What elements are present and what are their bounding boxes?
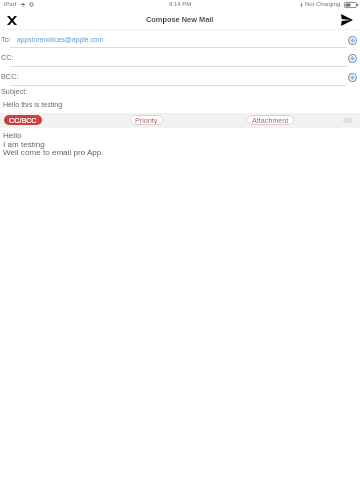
staticText: CC: (1, 53, 14, 61)
staticText: 9:14 PM (169, 1, 192, 8)
staticText: Compose New Mail (146, 15, 214, 23)
button[interactable]: Add recipient (344, 50, 360, 66)
staticText: CC/BCC (9, 116, 37, 124)
staticText: Not Charging (305, 1, 341, 8)
staticText: I am testing (3, 140, 45, 149)
button[interactable]: More (343, 118, 352, 123)
button[interactable]: Add recipient (344, 69, 360, 85)
staticText: BCC: (1, 72, 19, 80)
button[interactable] (0, 66, 360, 85)
button[interactable]: Close (5, 13, 19, 27)
staticText: Priority (135, 116, 158, 124)
button[interactable]: CC/BCC (4, 115, 42, 125)
button[interactable]: Send (340, 13, 354, 27)
button[interactable]: Priority (130, 115, 163, 125)
staticText: Subject: (1, 87, 28, 95)
button[interactable]: Attachment (247, 115, 294, 125)
staticText: To: (1, 35, 11, 43)
staticText: Hello (3, 131, 22, 140)
staticText: Well come to email pro App. (3, 148, 104, 157)
button[interactable] (0, 29, 360, 47)
staticText: Attachment (252, 116, 289, 124)
staticText: appstorenotices@apple.com (17, 36, 104, 44)
button[interactable] (0, 47, 360, 66)
button[interactable]: Add recipient (344, 32, 360, 48)
button[interactable] (0, 86, 360, 113)
staticText: Hello this is testing (3, 101, 63, 109)
staticText: iPad (4, 1, 17, 8)
